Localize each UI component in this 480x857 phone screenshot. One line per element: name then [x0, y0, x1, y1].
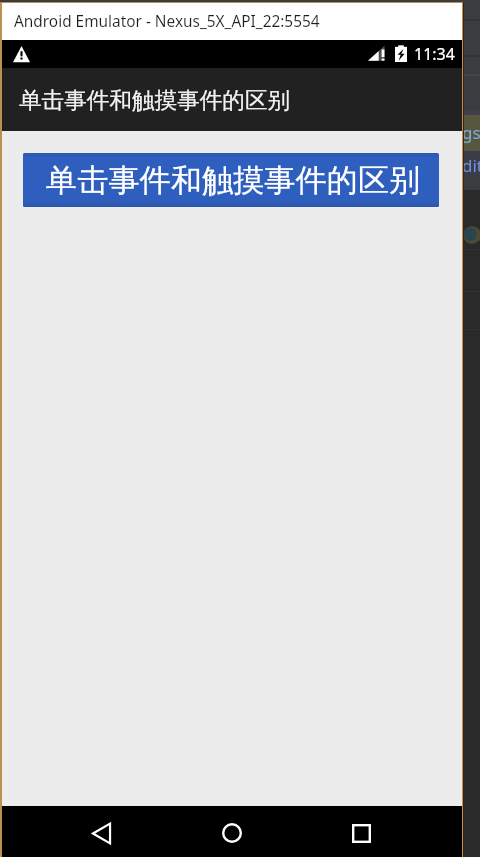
- staticText: 11:34: [414, 43, 455, 65]
- staticText: dit: [462, 154, 480, 177]
- button[interactable]: Home: [197, 806, 266, 857]
- button[interactable]: 单击事件和触摸事件的区别: [23, 153, 439, 207]
- button[interactable]: Recent apps: [327, 806, 396, 857]
- button[interactable]: Back: [67, 806, 136, 857]
- staticText: 单击事件和触摸事件的区别: [19, 86, 291, 114]
- staticText: Android Emulator - Nexus_5X_API_22:5554: [14, 11, 320, 32]
- staticText: gs: [462, 121, 480, 144]
- staticText: 单击事件和触摸事件的区别: [46, 161, 421, 200]
